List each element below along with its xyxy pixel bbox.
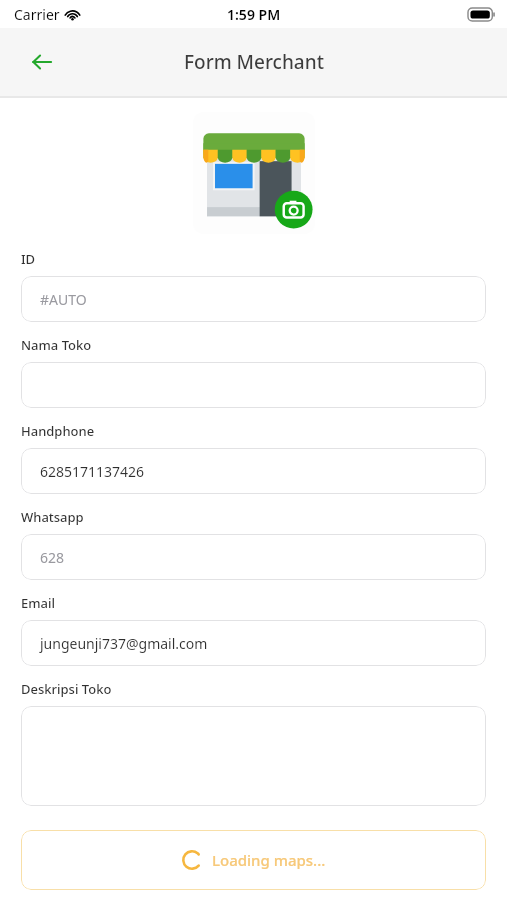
staticText: Form Merchant — [184, 49, 324, 75]
staticText: Email — [21, 594, 56, 612]
staticText: Carrier — [14, 5, 60, 24]
staticText: ID — [21, 250, 36, 268]
staticText: #AUTO — [40, 290, 87, 309]
button[interactable] — [21, 706, 486, 806]
staticText: jungeunji737@gmail.com — [40, 634, 208, 653]
button[interactable]: 628 — [21, 534, 486, 580]
staticText: Whatsapp — [21, 508, 84, 526]
staticText: Nama Toko — [21, 336, 92, 354]
staticText: 628 — [40, 548, 65, 567]
button[interactable] — [21, 362, 486, 408]
staticText: 6285171137426 — [40, 462, 145, 481]
staticText: Deskripsi Toko — [21, 680, 112, 698]
button[interactable]: 6285171137426 — [21, 448, 486, 494]
button[interactable]: Loading maps... — [21, 830, 486, 890]
button[interactable]: jungeunji737@gmail.com — [21, 620, 486, 666]
button[interactable]: Change store photo — [193, 112, 315, 234]
button[interactable]: Back — [20, 40, 64, 84]
staticText: Loading maps... — [212, 850, 326, 870]
button[interactable]: #AUTO — [21, 276, 486, 322]
staticText: 1:59 PM — [227, 5, 281, 24]
staticText: Handphone — [21, 422, 95, 440]
